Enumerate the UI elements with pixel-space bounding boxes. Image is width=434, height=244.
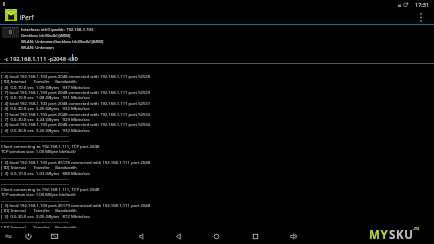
staticText: ----------------------------------------… bbox=[1, 197, 69, 203]
staticText: TCP window size: 1.00 MByte (default) bbox=[1, 191, 76, 197]
staticText: [ 4] local 192.168.1.103 port 2048 conne… bbox=[1, 73, 151, 79]
staticText: ----------------------------------------… bbox=[1, 218, 69, 224]
staticText: [ ID] Interval Transfer Bandwidth bbox=[1, 164, 77, 170]
button[interactable]: Power bbox=[21, 229, 35, 243]
staticText: 17:31 bbox=[415, 1, 430, 8]
button[interactable]: Screenshot bbox=[47, 229, 61, 243]
staticText: WLAN: UnknownGeekbox (rk30sdk) [ARM] bbox=[21, 39, 104, 45]
staticText: [ 3] 0.0-30.0 sec 3.05 GBytes 872 Mbits/… bbox=[1, 213, 91, 219]
button[interactable]: Back bbox=[171, 229, 185, 243]
staticText: WLAN: Unknown bbox=[21, 45, 54, 51]
staticText: -c 192.168.1.111 -p2048 -t30 bbox=[4, 55, 78, 63]
staticText: ----------------------------------------… bbox=[1, 180, 69, 186]
staticText: [ 7] 0.0-30.0 sec 3.24 GBytes 929 Mbits/… bbox=[1, 116, 91, 122]
staticText: iPerf bbox=[20, 13, 34, 21]
staticText: TCP window size: 1.00 MByte (default) bbox=[1, 148, 76, 154]
staticText: [ 7] local 192.168.1.103 port 2048 conne… bbox=[1, 89, 151, 95]
staticText: [ 4] local 192.168.1.103 port 2048 conne… bbox=[1, 100, 151, 106]
staticText: Interface: eth0 ipaddr: 192.168.1.103 bbox=[21, 27, 94, 33]
staticText: ----------------------------------------… bbox=[1, 137, 69, 143]
staticText: SKU bbox=[389, 227, 414, 243]
button[interactable]: Volume down bbox=[135, 229, 149, 243]
staticText: [ 3] local 192.168.1.103 port 45178 conn… bbox=[1, 159, 151, 165]
button[interactable]: 0 bbox=[2, 27, 19, 38]
staticText: [ 3] 0.0-10.0 sec 1.03 GBytes 888 Mbits/… bbox=[1, 170, 91, 176]
staticText: ----------------------------------------… bbox=[1, 68, 69, 74]
staticText: MY bbox=[369, 227, 389, 243]
button[interactable]: Home bbox=[209, 229, 223, 243]
staticText: ----------------------------------------… bbox=[1, 132, 69, 138]
staticText: Client connecting to 192.168.1.111, TCP … bbox=[1, 186, 100, 192]
staticText: [ 4] 0.0-30.0 sec 3.26 GBytes 932 Mbits/… bbox=[1, 127, 91, 133]
staticText: [ ID] Interval Transfer Bandwidth bbox=[1, 78, 77, 84]
staticText: [ 4] 0.0-10.0 sec 1.09 GBytes 937 Mbits/… bbox=[1, 84, 91, 90]
staticText: [ 3] 0.0-30.0 sec 2.98 GBytes 853 Mbits/… bbox=[1, 229, 91, 235]
staticText: Client connecting to 192.168.1.111, TCP … bbox=[1, 143, 100, 149]
button[interactable]: More options bbox=[414, 10, 428, 24]
button[interactable]: Recents bbox=[248, 229, 262, 243]
staticText: 0 bbox=[9, 29, 12, 36]
staticText: [ ID] Interval Transfer Bandwidth bbox=[1, 207, 77, 213]
staticText: ----------------------------------------… bbox=[1, 175, 69, 181]
staticText: TCP window size: 1.00 MByte (default) bbox=[2, 64, 76, 70]
staticText: .ru bbox=[413, 225, 420, 231]
button[interactable]: Volume up bbox=[286, 229, 300, 243]
staticText: [ 7] 0.0-10.0 sec 1.08 GBytes 931 Mbits/… bbox=[1, 94, 91, 100]
button[interactable]: Wireless bbox=[1, 229, 15, 243]
staticText: [ 7] local 192.168.1.103 port 2048 conne… bbox=[1, 111, 151, 117]
staticText: [ 4] local 192.168.1.103 port 2048 conne… bbox=[1, 121, 151, 127]
staticText: [ 4] 0.0-30.0 sec 3.26 GBytes 932 Mbits/… bbox=[1, 105, 91, 111]
staticText: ----------------------------------------… bbox=[1, 154, 69, 160]
staticText: [ 3] local 192.168.1.103 port 45179 conn… bbox=[1, 202, 151, 208]
staticText: [ ID] Interval Transfer Bandwidth bbox=[1, 224, 77, 230]
staticText: Geekbox (rk30sdk) [ARM] bbox=[21, 33, 71, 39]
